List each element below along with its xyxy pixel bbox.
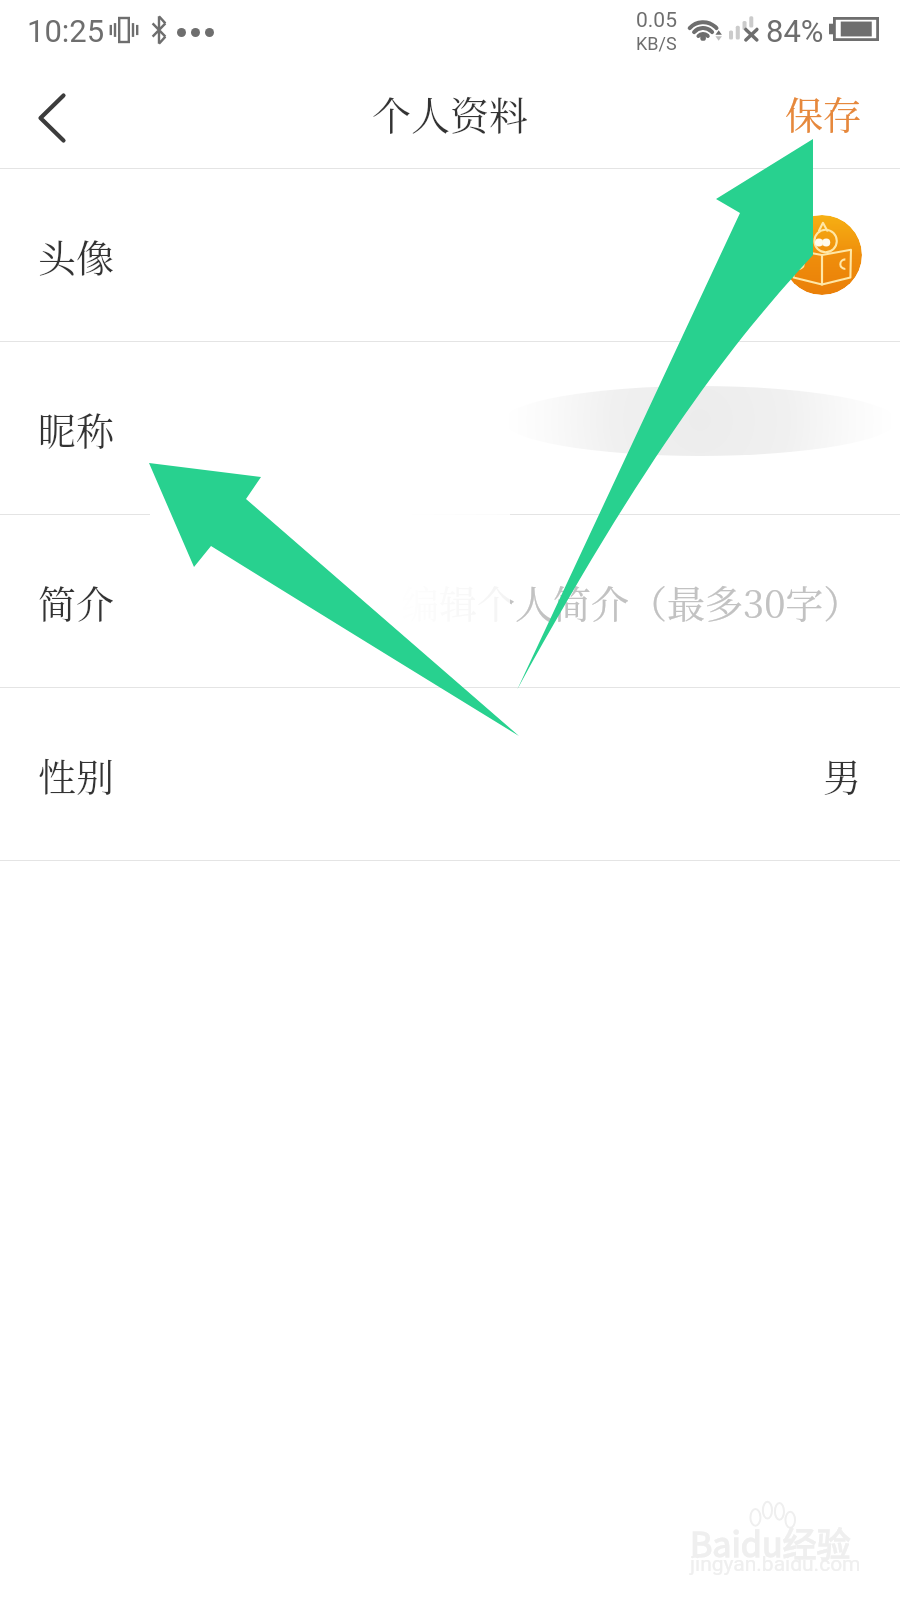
staticText: 昵称 (38, 401, 115, 456)
button[interactable]: Back (0, 67, 104, 168)
staticText: Baidu经验 (690, 1518, 851, 1567)
staticText: 保存 (785, 85, 862, 140)
button[interactable]: 保存 (785, 67, 862, 168)
staticText: 性别 (38, 747, 115, 802)
staticText: 个人资料 (372, 85, 529, 141)
staticText: 简介 (38, 574, 115, 629)
staticText: 头像 (38, 228, 115, 283)
staticText: 编辑个人简介（最多30字） (401, 574, 862, 629)
button[interactable]: 头像 (0, 169, 900, 341)
staticText: KB/S (636, 33, 677, 54)
staticText: jingyan.baidu.com (690, 1552, 861, 1577)
staticText: 84% (766, 13, 824, 49)
button[interactable]: 昵称 (0, 342, 900, 514)
button[interactable]: 简介 (0, 515, 900, 687)
button[interactable]: 性别 (0, 688, 900, 860)
staticText: 男 (823, 747, 862, 802)
staticText: 10:25 (27, 13, 105, 49)
staticText: 0.05 (636, 8, 677, 33)
